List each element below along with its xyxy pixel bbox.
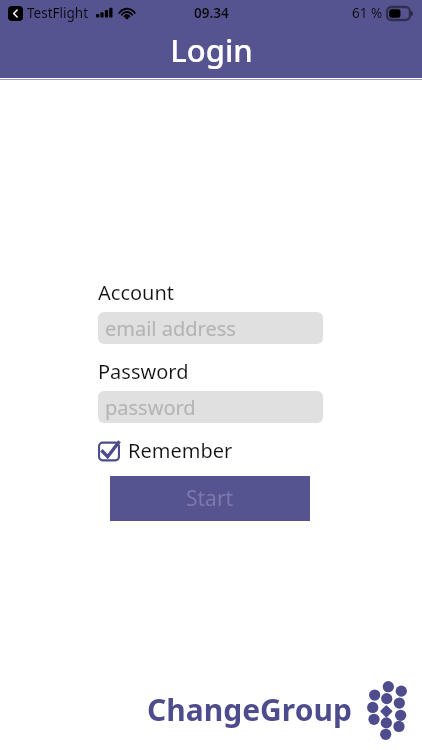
staticText: ChangeGroup xyxy=(147,689,352,730)
staticText: Login xyxy=(170,29,253,71)
staticText: Remember xyxy=(128,437,233,464)
button[interactable]: password xyxy=(98,391,323,423)
button[interactable]: ChangeGroup xyxy=(143,676,420,742)
staticText: Password xyxy=(98,358,189,385)
staticText: password xyxy=(105,394,196,421)
button[interactable]: Start xyxy=(110,476,310,521)
staticText: 61 % xyxy=(352,4,383,22)
staticText: email address xyxy=(105,315,236,342)
button[interactable]: email address xyxy=(98,312,323,344)
button[interactable]: Remember xyxy=(98,435,233,466)
staticText: Account xyxy=(98,279,175,306)
staticText: 09.34 xyxy=(194,4,229,22)
staticText: Start xyxy=(186,484,234,513)
staticText: TestFlight xyxy=(27,4,89,22)
